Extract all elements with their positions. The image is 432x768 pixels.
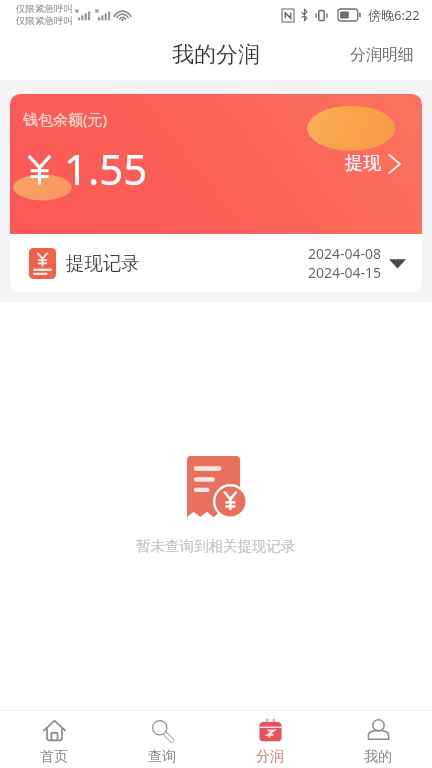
staticText: 仅限紧急呼叫 bbox=[16, 15, 73, 27]
staticText: 我的分润 bbox=[172, 41, 260, 69]
button[interactable]: 我的 bbox=[324, 711, 432, 768]
button[interactable]: 分润 bbox=[216, 711, 324, 768]
staticText: 首页 bbox=[40, 748, 68, 766]
staticText: 2024-04-08 bbox=[308, 244, 382, 263]
other: Select date range bbox=[389, 258, 406, 269]
staticText: 1.55 bbox=[64, 140, 148, 197]
staticText: 分润 bbox=[256, 748, 284, 766]
staticText: 提现 bbox=[345, 152, 381, 175]
staticText: 钱包余额(元) bbox=[23, 109, 108, 129]
button[interactable]: 分润明细 bbox=[332, 33, 432, 77]
button[interactable]: 提现 bbox=[342, 149, 404, 178]
staticText: 仅限紧急呼叫 bbox=[16, 3, 73, 15]
staticText: 暂未查询到相关提现记录 bbox=[136, 537, 296, 555]
staticText: 傍晚6:22 bbox=[368, 6, 420, 24]
staticText: 2024-04-15 bbox=[308, 263, 382, 282]
staticText: 提现记录 bbox=[66, 252, 140, 275]
staticText: 查询 bbox=[148, 748, 176, 766]
staticText: 我的 bbox=[364, 748, 392, 766]
button[interactable]: 首页 bbox=[0, 711, 108, 768]
button[interactable]: 查询 bbox=[108, 711, 216, 768]
button[interactable]: 提现记录 bbox=[10, 234, 422, 292]
staticText: 分润明细 bbox=[350, 45, 414, 65]
